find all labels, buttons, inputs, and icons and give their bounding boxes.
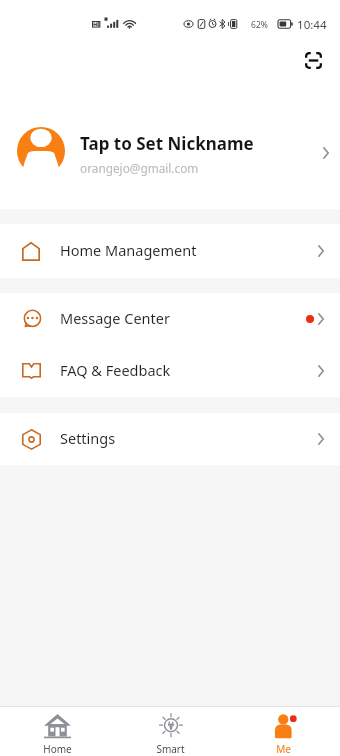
staticText: Home Management (60, 240, 197, 260)
staticText: 10:44 (297, 17, 327, 33)
button[interactable]: Scan QR code (296, 43, 330, 77)
staticText: Me (276, 742, 291, 756)
staticText: Home (43, 742, 72, 756)
button[interactable]: Smart (114, 707, 227, 756)
button[interactable]: FAQ & Feedback (0, 345, 340, 397)
button[interactable]: Settings (0, 413, 340, 465)
button[interactable]: Message Center (0, 293, 340, 345)
button[interactable]: Home Management (0, 224, 340, 278)
staticText: Message Center (60, 308, 170, 328)
button[interactable]: Me (227, 707, 340, 756)
button[interactable]: Home (0, 707, 114, 756)
staticText: Tap to Set Nickname (80, 132, 254, 155)
staticText: Smart (156, 742, 185, 756)
staticText: FAQ & Feedback (60, 360, 171, 380)
staticText: Settings (60, 428, 116, 448)
staticText: orangejo@gmail.com (80, 160, 199, 176)
button[interactable]: Tap to Set Nickname (0, 100, 340, 209)
staticText: 62% (251, 19, 268, 31)
